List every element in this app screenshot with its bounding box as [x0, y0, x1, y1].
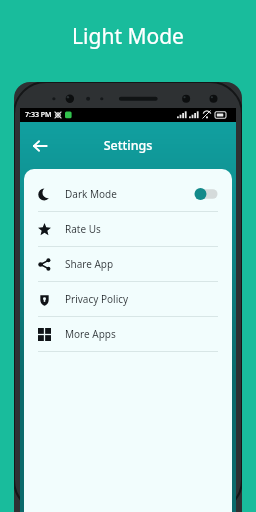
button[interactable]: More Apps: [24, 317, 232, 351]
staticText: 7:33 PM: [25, 110, 52, 120]
staticText: Light Mode: [0, 22, 256, 51]
staticText: Rate Us: [65, 222, 218, 236]
button[interactable]: Rate Us: [24, 212, 232, 246]
button[interactable]: Back: [26, 132, 54, 160]
staticText: More Apps: [65, 327, 218, 341]
button[interactable]: Dark Mode: [24, 177, 232, 211]
staticText: Settings: [54, 137, 202, 154]
staticText: Dark Mode: [65, 187, 194, 201]
staticText: Privacy Policy: [65, 292, 218, 306]
staticText: Share App: [65, 257, 218, 271]
button[interactable]: Privacy Policy: [24, 282, 232, 316]
button[interactable]: Share App: [24, 247, 232, 281]
